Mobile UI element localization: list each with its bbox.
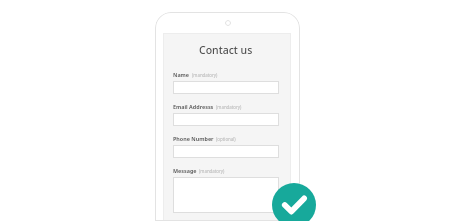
button[interactable]: Success [272, 183, 316, 221]
staticText: (mandatory) [192, 72, 218, 78]
staticText: Phone Number [173, 135, 214, 142]
staticText: (mandatory) [199, 168, 225, 174]
staticText: Contact us [199, 43, 253, 57]
staticText: (optional) [216, 136, 236, 142]
button[interactable]: Message [173, 167, 279, 213]
staticText: Name [173, 71, 190, 78]
button[interactable]: Email Addresss [173, 103, 279, 126]
staticText: (mandatory) [216, 104, 242, 110]
button[interactable]: Phone Number [173, 135, 279, 158]
staticText: Message [173, 167, 197, 174]
staticText: Email Addresss [173, 103, 214, 110]
button[interactable]: Name [173, 71, 279, 94]
